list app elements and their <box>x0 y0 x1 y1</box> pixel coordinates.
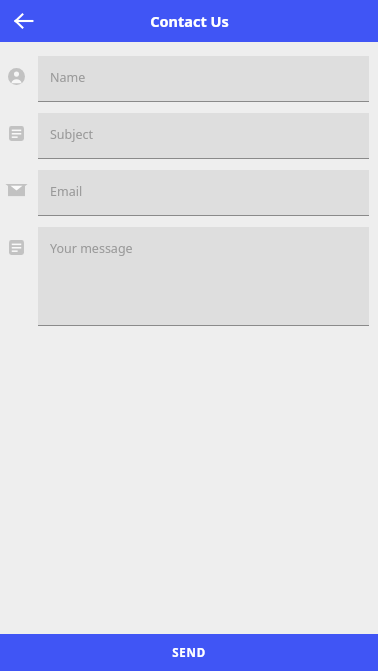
staticText: Email <box>50 183 83 200</box>
button[interactable]: Subject <box>38 113 369 159</box>
staticText: Your message <box>50 240 133 257</box>
staticText: Name <box>50 69 86 86</box>
button[interactable]: Email <box>38 170 369 216</box>
button[interactable]: Name <box>38 56 369 102</box>
button[interactable]: SEND <box>0 634 378 671</box>
button[interactable]: Back <box>6 3 42 39</box>
staticText: Subject <box>50 126 94 143</box>
staticText: Contact Us <box>150 11 229 31</box>
staticText: SEND <box>172 645 206 661</box>
button[interactable]: Your message <box>38 227 369 326</box>
